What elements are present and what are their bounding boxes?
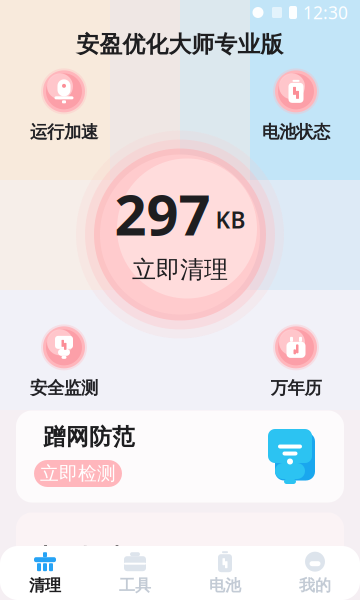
staticText: 安全监测 <box>30 377 98 399</box>
staticText: 清理 <box>29 576 61 595</box>
staticText: 电池 <box>209 576 241 595</box>
staticText: 万年历 <box>270 377 321 399</box>
staticText: 上网提速 <box>34 544 126 571</box>
staticText: 电池状态 <box>262 121 330 143</box>
staticText: 我的 <box>299 576 331 595</box>
staticText: 安盈优化大师专业版 <box>76 31 283 58</box>
staticText: 立即检测 <box>40 462 116 485</box>
staticText: 运行加速 <box>30 121 98 143</box>
staticText: 297 <box>114 177 210 251</box>
staticText: 工具 <box>119 576 151 595</box>
button[interactable]: 工具 <box>90 546 180 600</box>
button[interactable]: 万年历 <box>244 326 348 396</box>
button[interactable]: 电池状态 <box>244 70 348 140</box>
button[interactable]: 清理 <box>0 546 90 600</box>
button[interactable]: 运行加速 <box>12 70 116 140</box>
button[interactable]: 我的 <box>270 546 360 600</box>
staticText: 立即清理 <box>132 255 228 284</box>
staticText: KB <box>215 205 245 235</box>
button[interactable]: 安全监测 <box>12 326 116 396</box>
staticText: 12:30 <box>303 1 348 24</box>
button[interactable]: 297 <box>76 144 284 324</box>
button[interactable]: 电池 <box>180 546 270 600</box>
button[interactable]: 蹭网防范 <box>16 410 344 502</box>
button[interactable]: 上网提速 <box>16 512 344 600</box>
staticText: 蹭网防范 <box>43 423 135 451</box>
